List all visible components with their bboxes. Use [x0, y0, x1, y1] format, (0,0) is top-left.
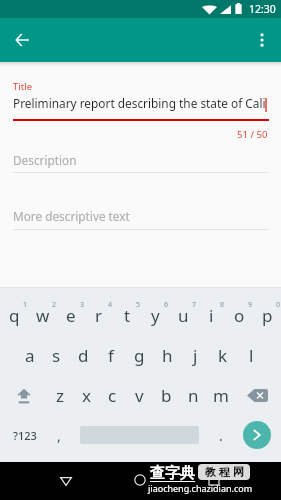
- staticText: More descriptive text: [13, 208, 130, 224]
- button[interactable]: Enter: [243, 421, 271, 449]
- button[interactable]: j: [181, 335, 209, 375]
- staticText: z: [56, 384, 64, 407]
- staticText: 网: [233, 465, 244, 479]
- staticText: 程: [219, 465, 230, 479]
- button[interactable]: a: [16, 335, 43, 375]
- button[interactable]: h: [153, 335, 181, 375]
- staticText: 8: [220, 300, 225, 310]
- button[interactable]: u: [169, 295, 197, 335]
- button[interactable]: p: [253, 295, 281, 335]
- staticText: b: [161, 384, 172, 407]
- staticText: v: [135, 384, 144, 407]
- button[interactable]: e: [57, 295, 85, 335]
- button[interactable]: Shift: [0, 375, 47, 415]
- staticText: .: [219, 426, 223, 445]
- staticText: a: [25, 344, 35, 367]
- button[interactable]: t: [113, 295, 141, 335]
- staticText: Preliminary report describing the state …: [13, 95, 266, 111]
- staticText: ,: [57, 426, 61, 445]
- button[interactable]: l: [237, 335, 265, 375]
- button[interactable]: n: [180, 375, 207, 415]
- staticText: m: [213, 384, 229, 407]
- button[interactable]: o: [225, 295, 253, 335]
- button[interactable]: Back: [48, 462, 84, 498]
- button[interactable]: s: [43, 335, 70, 375]
- staticText: c: [108, 384, 117, 407]
- button[interactable]: b: [153, 375, 180, 415]
- staticText: 9: [248, 300, 253, 310]
- staticText: t: [124, 304, 131, 327]
- button[interactable]: y: [141, 295, 169, 335]
- button[interactable]: i: [197, 295, 225, 335]
- button[interactable]: Recent apps: [196, 462, 232, 498]
- staticText: d: [78, 344, 89, 367]
- staticText: h: [162, 344, 173, 367]
- staticText: p: [262, 304, 273, 327]
- staticText: 6: [164, 300, 169, 310]
- staticText: 2: [52, 300, 57, 310]
- button[interactable]: r: [85, 295, 113, 335]
- button[interactable]: f: [97, 335, 125, 375]
- button[interactable]: x: [73, 375, 99, 415]
- button[interactable]: More options: [248, 26, 276, 54]
- button[interactable]: ,: [46, 415, 72, 455]
- button[interactable]: Home: [122, 462, 158, 498]
- button[interactable]: Navigate up: [8, 26, 36, 54]
- staticText: r: [95, 304, 103, 327]
- staticText: 3: [80, 300, 85, 310]
- staticText: w: [36, 304, 50, 327]
- staticText: 教: [205, 465, 216, 479]
- staticText: e: [66, 304, 76, 327]
- staticText: s: [52, 344, 61, 367]
- staticText: x: [82, 384, 91, 407]
- button[interactable]: d: [70, 335, 97, 375]
- button[interactable]: k: [209, 335, 237, 375]
- button[interactable]: Backspace: [234, 375, 281, 415]
- staticText: g: [134, 344, 145, 367]
- button[interactable]: z: [47, 375, 73, 415]
- staticText: 4: [108, 300, 113, 310]
- staticText: 查字典: [150, 464, 195, 483]
- staticText: 7: [192, 300, 197, 310]
- button[interactable]: c: [99, 375, 126, 415]
- staticText: u: [178, 304, 189, 327]
- staticText: j: [193, 344, 198, 367]
- button[interactable]: ?123: [5, 415, 45, 455]
- staticText: k: [218, 344, 228, 367]
- staticText: 5: [136, 300, 141, 310]
- staticText: l: [249, 344, 254, 367]
- staticText: Title: [13, 80, 33, 93]
- staticText: 12:30: [249, 2, 276, 16]
- staticText: i: [209, 304, 214, 327]
- staticText: ?123: [13, 428, 37, 443]
- staticText: q: [9, 304, 20, 327]
- staticText: 0: [276, 300, 281, 310]
- staticText: y: [151, 304, 160, 327]
- staticText: 51 / 50: [237, 128, 268, 141]
- staticText: o: [234, 304, 245, 327]
- staticText: Description: [13, 152, 77, 168]
- staticText: n: [188, 384, 199, 407]
- button[interactable]: q: [0, 295, 29, 335]
- staticText: jiaocheng.chazidian.com: [148, 482, 253, 494]
- button[interactable]: .: [208, 415, 234, 455]
- staticText: f: [108, 344, 114, 367]
- button[interactable]: g: [125, 335, 153, 375]
- staticText: 1: [23, 300, 28, 310]
- button[interactable]: v: [126, 375, 153, 415]
- button[interactable]: w: [29, 295, 57, 335]
- button[interactable]: m: [207, 375, 234, 415]
